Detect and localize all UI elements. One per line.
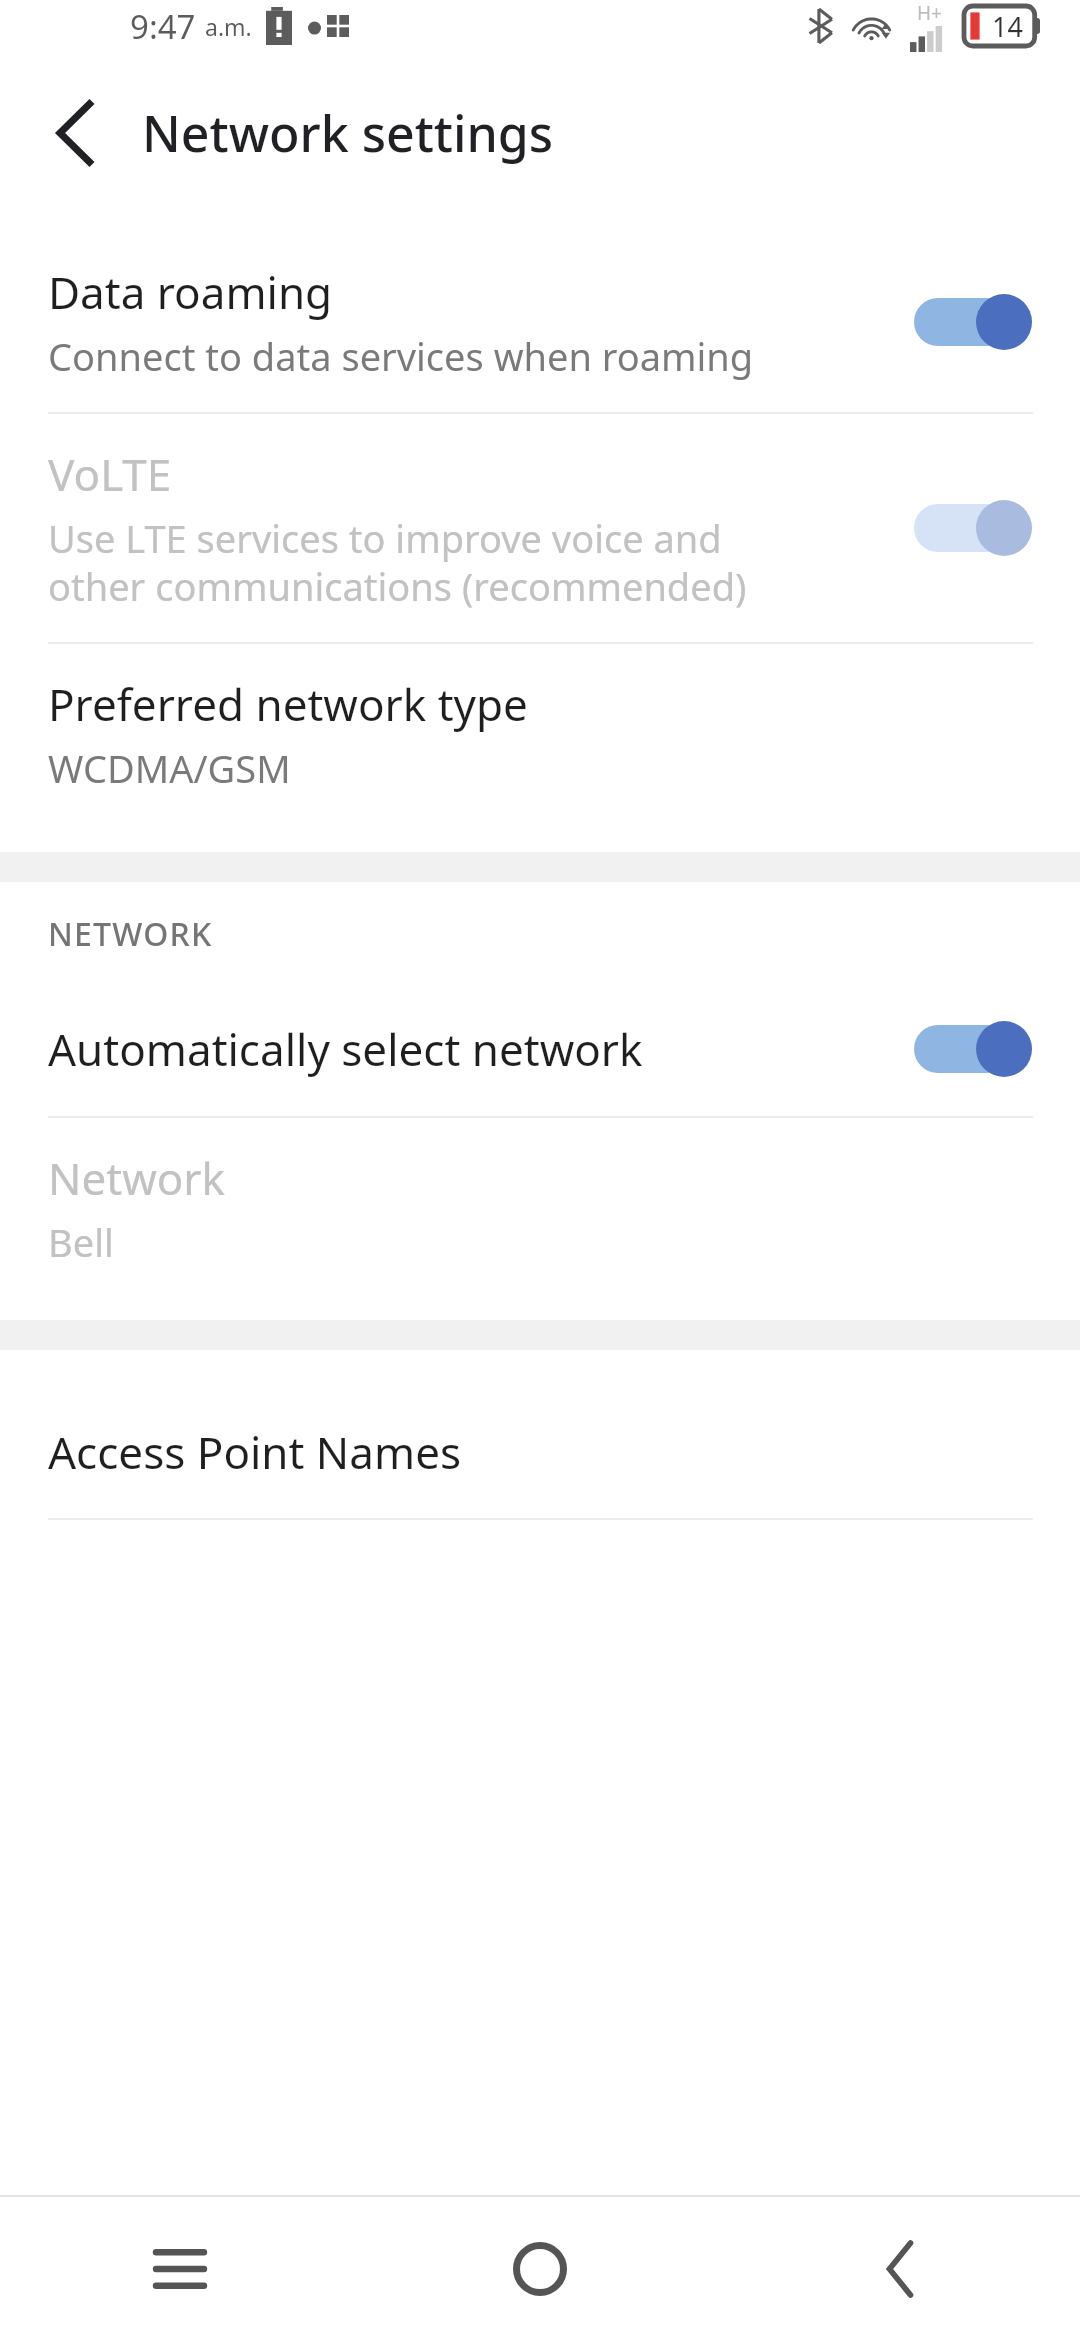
staticText: H+ [917, 0, 942, 26]
button[interactable]: Back [34, 91, 118, 175]
staticText: Network settings [142, 99, 554, 167]
button[interactable]: Home [480, 2209, 600, 2329]
button[interactable]: Toggle [914, 1018, 1032, 1080]
button[interactable]: Preferred network type [0, 644, 1080, 824]
staticText: Data roaming [48, 262, 333, 322]
button[interactable]: Toggle [914, 291, 1032, 353]
button[interactable]: Network [0, 1118, 1080, 1298]
button[interactable]: Access Point Names [0, 1386, 1080, 1518]
staticText: Preferred network type [48, 674, 528, 734]
staticText: Network [48, 1148, 226, 1208]
staticText: a.m. [205, 11, 252, 42]
staticText: NETWORK [48, 912, 213, 956]
button[interactable]: Back [840, 2209, 960, 2329]
staticText: WCDMA/GSM [48, 742, 291, 794]
staticText: VoLTE [48, 444, 172, 504]
button[interactable]: Recent apps [120, 2209, 240, 2329]
staticText: 9:47 [130, 4, 196, 49]
button[interactable]: Toggle [914, 497, 1032, 559]
staticText: Connect to data services when roaming [48, 330, 754, 382]
staticText: 14 [992, 8, 1023, 45]
button[interactable]: Automatically select network [0, 982, 1080, 1116]
staticText: Automatically select network [48, 1019, 643, 1079]
button[interactable]: Data roaming [0, 232, 1080, 412]
staticText: Bell [48, 1216, 114, 1268]
staticText: Use LTE services to improve voice and ot… [48, 512, 747, 612]
staticText: Access Point Names [48, 1422, 462, 1482]
button[interactable]: VoLTE [0, 414, 1080, 642]
